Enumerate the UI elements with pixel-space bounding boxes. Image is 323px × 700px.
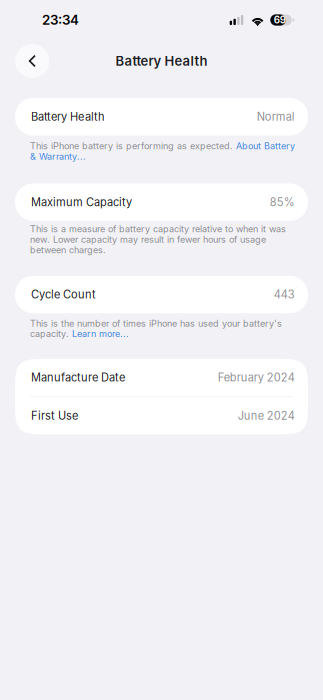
staticText: Manufacture Date bbox=[31, 371, 125, 384]
staticText: 69 bbox=[274, 14, 286, 26]
staticText: between charges. bbox=[30, 244, 106, 255]
staticText: Cycle Count bbox=[31, 288, 96, 301]
button[interactable]: Maximum Capacity bbox=[15, 183, 308, 221]
staticText: February 2024 bbox=[218, 371, 295, 384]
button[interactable]: Back bbox=[15, 44, 49, 78]
staticText: 23:34 bbox=[42, 12, 79, 28]
staticText: Battery Health bbox=[31, 110, 105, 123]
button[interactable]: Battery Health bbox=[15, 98, 308, 135]
staticText: June 2024 bbox=[238, 409, 295, 422]
button[interactable]: Cycle Count bbox=[15, 276, 308, 313]
staticText: About Battery bbox=[236, 140, 295, 151]
staticText: This iPhone battery is performing as exp… bbox=[30, 140, 236, 151]
staticText: Battery Health bbox=[115, 53, 207, 69]
staticText: & Warranty... bbox=[30, 151, 86, 162]
staticText: This is a measure of battery capacity re… bbox=[30, 223, 286, 234]
staticText: Learn more... bbox=[72, 328, 129, 339]
staticText: 443 bbox=[274, 288, 295, 301]
staticText: Normal bbox=[257, 110, 295, 123]
staticText: 85% bbox=[270, 195, 295, 209]
staticText: capacity. bbox=[30, 328, 72, 339]
staticText: This is the number of times iPhone has u… bbox=[30, 318, 282, 329]
staticText: First Use bbox=[31, 409, 78, 422]
staticText: Maximum Capacity bbox=[31, 195, 132, 209]
staticText: new. Lower capacity may result in fewer … bbox=[30, 234, 266, 245]
